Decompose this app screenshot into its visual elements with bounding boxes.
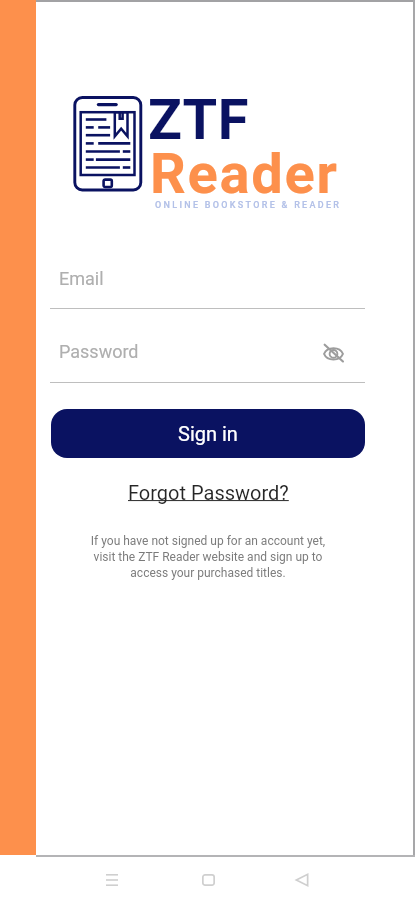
button[interactable]: Email	[50, 260, 365, 309]
staticText: ONLINE BOOKSTORE & READER	[155, 200, 342, 211]
staticText: Forgot Password?	[128, 481, 289, 504]
staticText: ZTF	[148, 87, 250, 153]
staticText: Email	[59, 268, 104, 289]
staticText: Password	[59, 341, 139, 362]
button[interactable]: Forgot Password?	[51, 477, 365, 507]
button[interactable]: Show password	[317, 337, 349, 369]
button[interactable]: Recent apps	[90, 858, 134, 900]
staticText: Reader	[150, 141, 339, 207]
button[interactable]: Home	[186, 858, 230, 900]
staticText: Sign in	[178, 422, 238, 445]
button[interactable]: Sign in	[51, 409, 365, 458]
staticText: If you have not signed up for an account…	[88, 534, 328, 580]
button[interactable]: Back	[280, 858, 324, 900]
